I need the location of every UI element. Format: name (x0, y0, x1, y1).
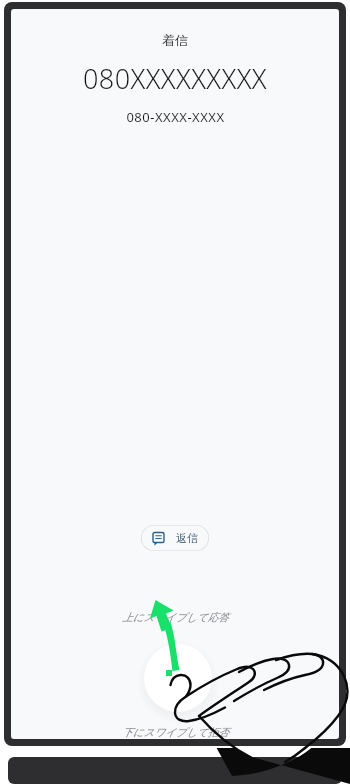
button[interactable]: 返信 (141, 525, 209, 551)
staticText: 上にスワイプして応答 (122, 611, 229, 624)
staticText: 080-XXXX-XXXX (126, 108, 225, 126)
button[interactable]: 通話に応答 (0, 0, 350, 784)
staticText: 着信 (162, 32, 188, 48)
staticText: 返信 (176, 531, 198, 545)
staticText: 080XXXXXXXXX (83, 60, 267, 97)
staticText: 下にスワイプして拒否 (122, 726, 229, 739)
